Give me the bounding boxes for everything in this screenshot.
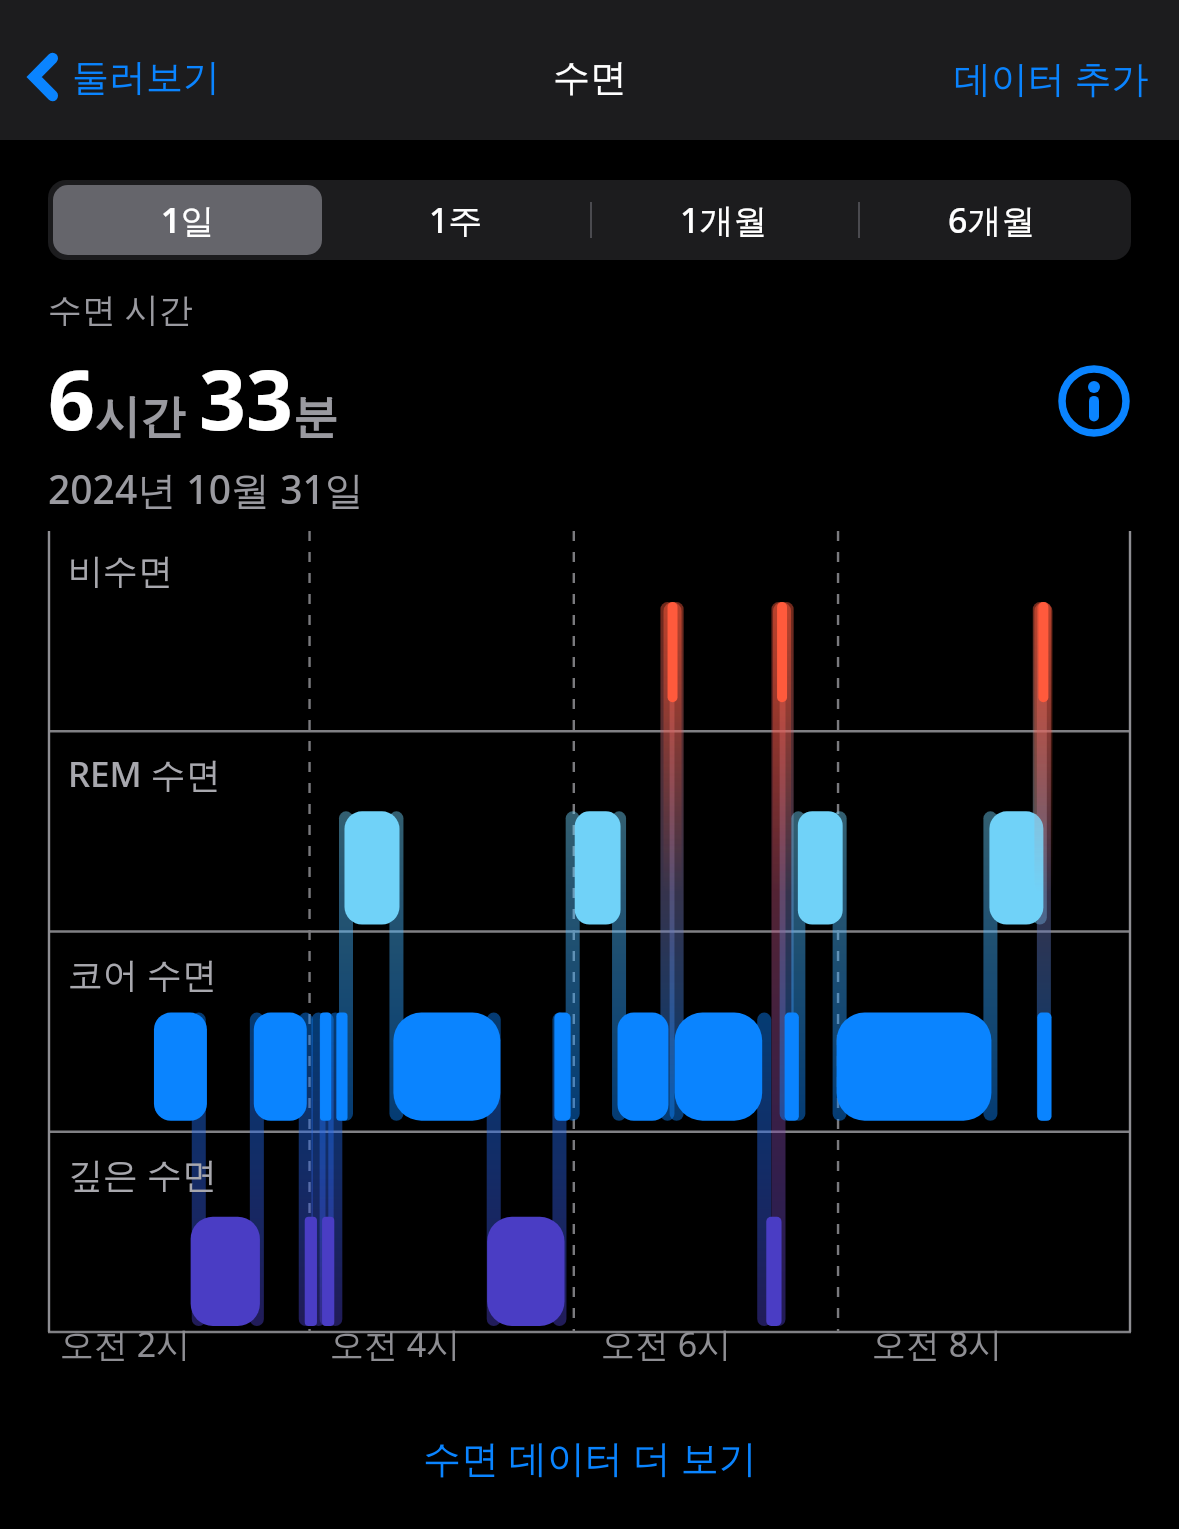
staticText: 1주 (429, 197, 483, 243)
staticText: 오전 2시 (60, 1321, 191, 1367)
staticText: 오전 8시 (872, 1321, 1003, 1367)
staticText: 수면 시간 (48, 286, 193, 332)
staticText: 6개월 (948, 197, 1036, 243)
staticText: 깊은 수면 (68, 1150, 218, 1198)
button[interactable]: 둘러보기 (20, 45, 226, 109)
staticText: 6 (48, 342, 95, 454)
button[interactable]: 1개월 (590, 185, 858, 255)
button[interactable]: 정보 (1057, 364, 1131, 438)
staticText: 1개월 (680, 197, 768, 243)
button[interactable]: 6개월 (858, 185, 1126, 255)
staticText: 1일 (161, 197, 215, 243)
staticText: 분 (293, 389, 338, 446)
staticText: 비수면 (68, 549, 173, 593)
staticText: 둘러보기 (72, 54, 220, 101)
staticText: REM 수면 (68, 750, 221, 798)
staticText: 수면 (553, 54, 627, 101)
staticText: 수면 데이터 더 보기 (423, 1431, 757, 1483)
staticText: 2024년 10월 31일 (48, 462, 364, 515)
staticText: 코어 수면 (68, 950, 218, 998)
staticText: 시간 (95, 389, 185, 446)
staticText: 오전 6시 (601, 1321, 732, 1367)
button[interactable]: 1일 (53, 185, 322, 255)
staticText: 33 (199, 342, 293, 454)
staticText: 데이터 추가 (954, 52, 1149, 103)
button[interactable]: 데이터 추가 (948, 46, 1155, 109)
button[interactable]: 1주 (322, 185, 590, 255)
staticText: 오전 4시 (330, 1321, 461, 1367)
button[interactable]: 수면 데이터 더 보기 (0, 1431, 1179, 1483)
